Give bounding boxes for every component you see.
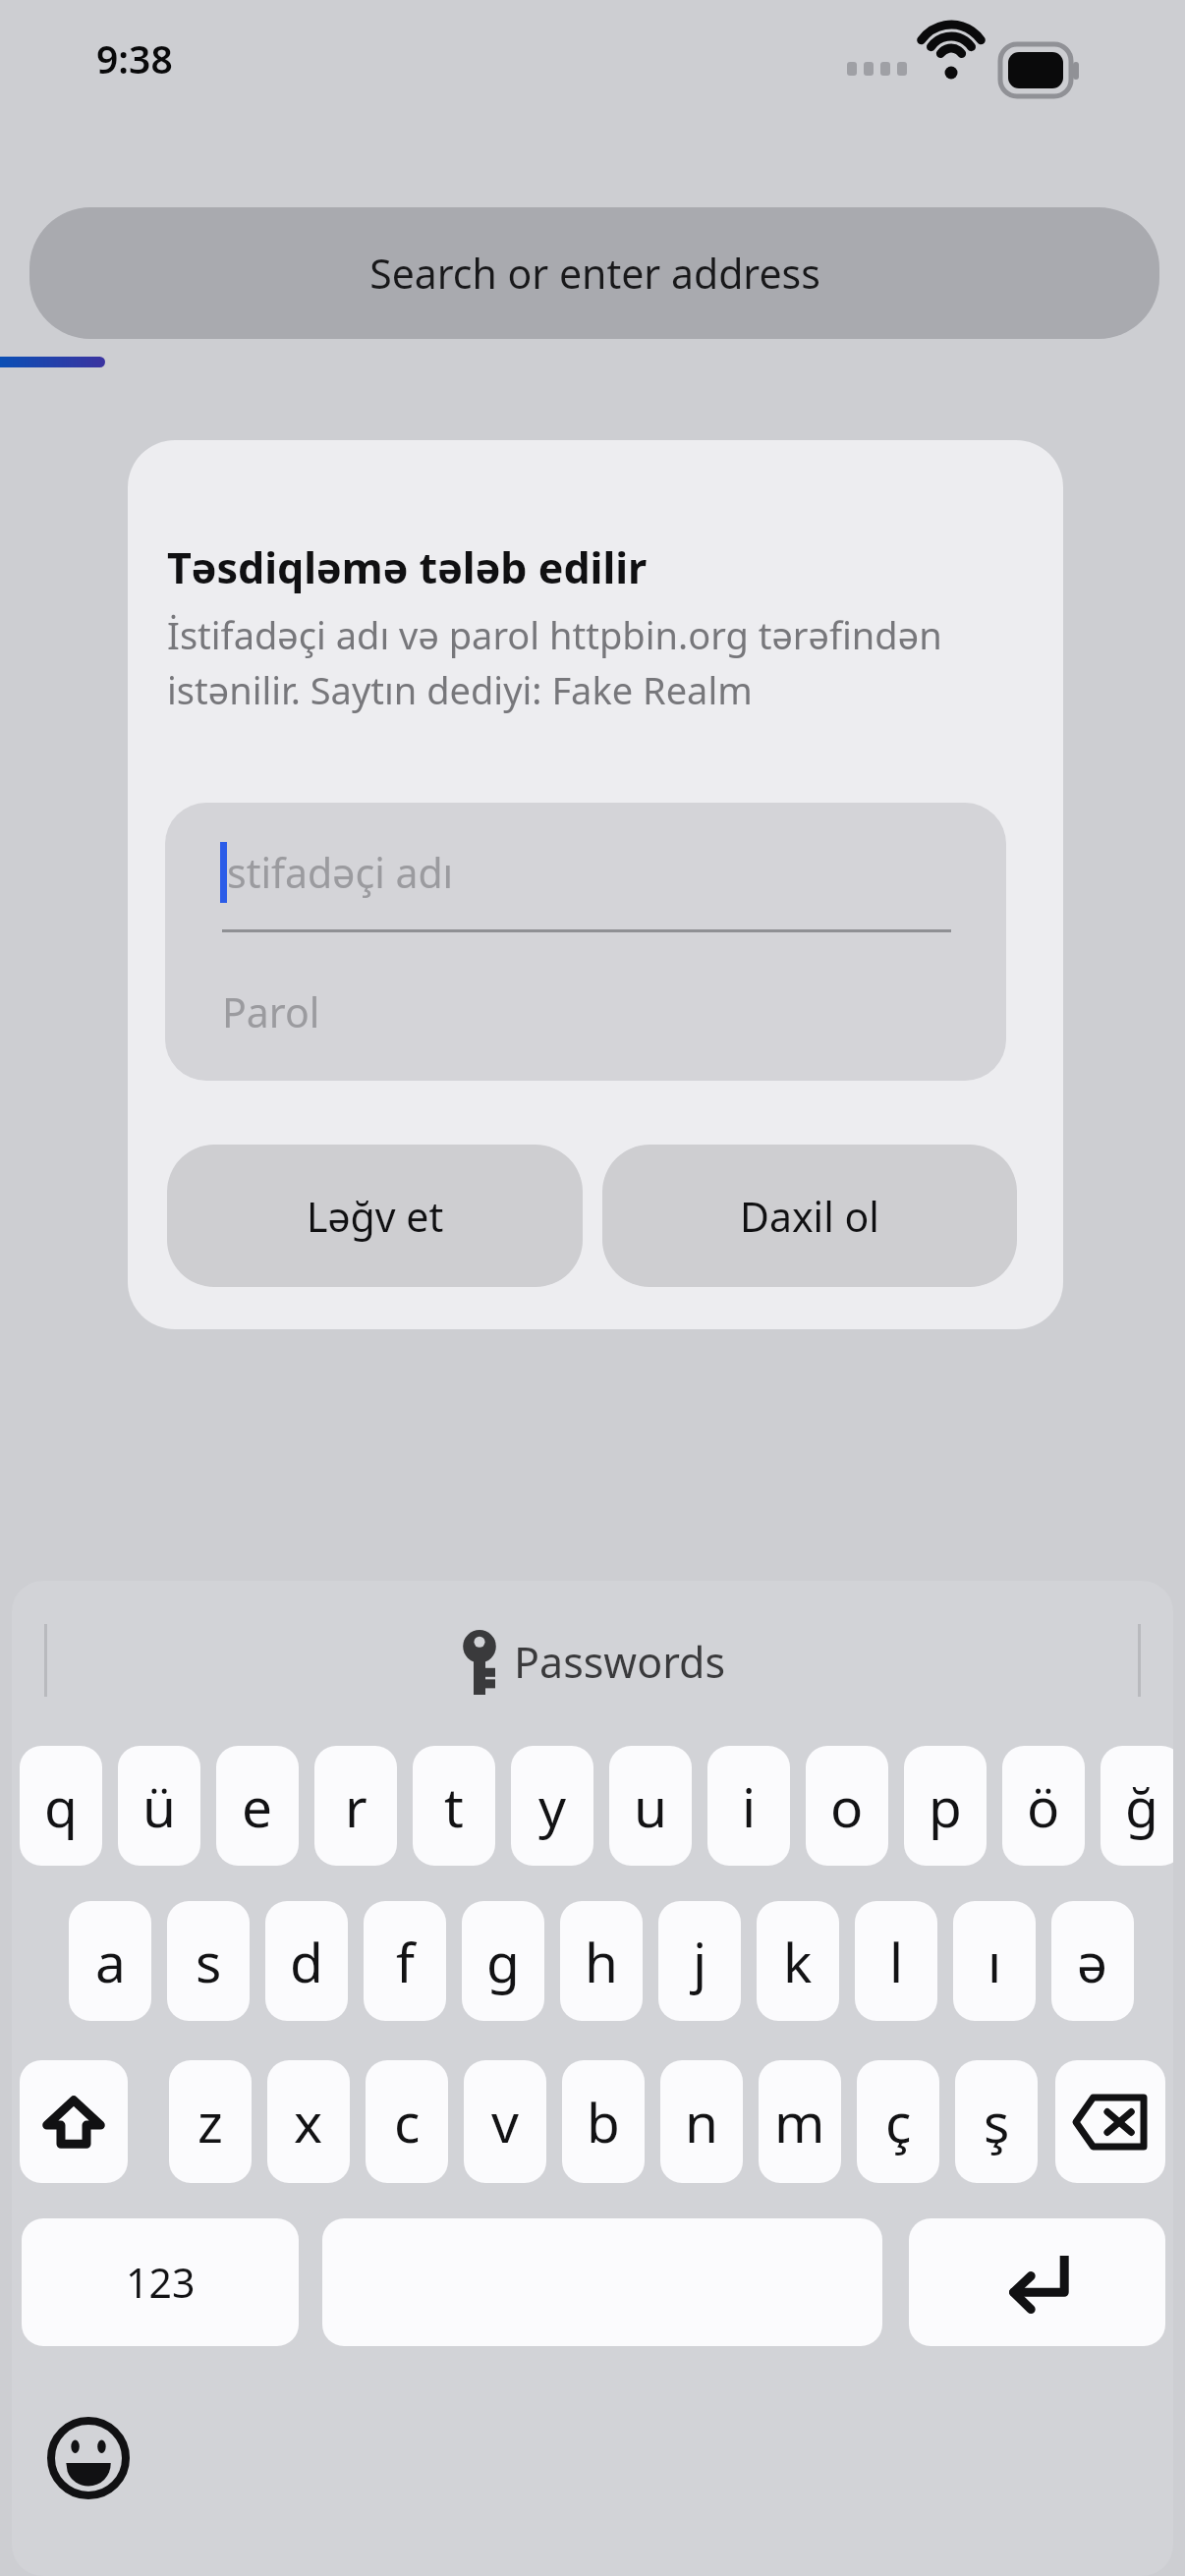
staticText: Daxil ol	[740, 1189, 879, 1244]
staticText: g	[486, 1925, 520, 1998]
staticText: 123	[126, 2255, 196, 2310]
button[interactable]: a	[69, 1901, 151, 2021]
staticText: ö	[1027, 1769, 1060, 1843]
staticText: ğ	[1125, 1769, 1158, 1843]
button[interactable]: h	[560, 1901, 643, 2021]
button[interactable]: Backspace	[1055, 2060, 1165, 2183]
button[interactable]: d	[265, 1901, 348, 2021]
staticText: d	[290, 1925, 323, 1998]
staticText: ı	[987, 1925, 1002, 1998]
staticText: Ləğv et	[307, 1189, 444, 1244]
staticText: Search or enter address	[369, 246, 820, 301]
staticText: i	[742, 1769, 757, 1843]
staticText: İstifadəçi adı və parol httpbin.org tərə…	[167, 609, 1032, 715]
button[interactable]: s	[167, 1901, 250, 2021]
staticText: j	[693, 1925, 707, 1998]
staticText: o	[830, 1769, 864, 1843]
button[interactable]: ı	[953, 1901, 1036, 2021]
button[interactable]: 123	[22, 2218, 299, 2346]
button[interactable]: Emoji	[41, 2411, 136, 2505]
button[interactable]: y	[511, 1746, 593, 1866]
staticText: y	[538, 1769, 567, 1843]
staticText: ş	[984, 2085, 1010, 2158]
staticText: q	[44, 1769, 78, 1843]
button[interactable]: Shift	[20, 2060, 128, 2183]
staticText: k	[783, 1925, 813, 1998]
button[interactable]: ğ	[1100, 1746, 1173, 1866]
button[interactable]: b	[562, 2060, 645, 2183]
staticText: c	[394, 2085, 421, 2158]
staticText: b	[587, 2085, 620, 2158]
staticText: s	[196, 1925, 222, 1998]
staticText: Təsdiqləmə tələb edilir	[167, 538, 648, 596]
button[interactable]: f	[364, 1901, 446, 2021]
button[interactable]: l	[855, 1901, 937, 2021]
button[interactable]: n	[660, 2060, 743, 2183]
staticText: m	[774, 2085, 825, 2158]
staticText: n	[685, 2085, 718, 2158]
staticText: v	[491, 2085, 519, 2158]
button[interactable]: ö	[1002, 1746, 1085, 1866]
button[interactable]: z	[169, 2060, 252, 2183]
button[interactable]: q	[20, 1746, 102, 1866]
staticText: Parol	[222, 984, 320, 1039]
staticText: z	[197, 2085, 223, 2158]
staticText: stifadəçi adı	[227, 845, 454, 900]
button[interactable]: t	[413, 1746, 495, 1866]
button[interactable]: j	[658, 1901, 741, 2021]
button[interactable]: Space	[322, 2218, 882, 2346]
staticText: h	[585, 1925, 618, 1998]
button[interactable]: Parol	[165, 942, 1006, 1081]
button[interactable]: c	[366, 2060, 448, 2183]
staticText: ü	[142, 1769, 176, 1843]
button[interactable]: Daxil ol	[602, 1145, 1017, 1287]
staticText: x	[294, 2085, 323, 2158]
staticText: r	[345, 1769, 367, 1843]
button[interactable]: Search or enter address	[29, 207, 1159, 339]
button[interactable]: x	[267, 2060, 350, 2183]
button[interactable]: i	[707, 1746, 790, 1866]
button[interactable]: r	[314, 1746, 397, 1866]
staticText: p	[929, 1769, 962, 1843]
button[interactable]: stifadəçi adı	[165, 803, 1006, 942]
staticText: a	[95, 1925, 126, 1998]
staticText: e	[242, 1769, 273, 1843]
staticText: f	[396, 1925, 415, 1998]
button[interactable]: Ləğv et	[167, 1145, 583, 1287]
staticText: ə	[1077, 1925, 1108, 1998]
button[interactable]: m	[759, 2060, 841, 2183]
button[interactable]: ç	[857, 2060, 939, 2183]
staticText: 9:38	[96, 32, 173, 84]
staticText: l	[889, 1925, 904, 1998]
button[interactable]: ə	[1051, 1901, 1134, 2021]
button[interactable]: ü	[118, 1746, 200, 1866]
staticText: ç	[885, 2085, 912, 2158]
button[interactable]: p	[904, 1746, 987, 1866]
button[interactable]: g	[462, 1901, 544, 2021]
button[interactable]: o	[806, 1746, 888, 1866]
button[interactable]: v	[464, 2060, 546, 2183]
button[interactable]: k	[757, 1901, 839, 2021]
button[interactable]: ş	[955, 2060, 1038, 2183]
staticText: t	[444, 1769, 464, 1843]
button[interactable]: Passwords	[12, 1581, 1173, 1742]
button[interactable]: e	[216, 1746, 299, 1866]
button[interactable]: u	[609, 1746, 692, 1866]
button[interactable]: Return	[909, 2218, 1165, 2346]
staticText: Passwords	[514, 1633, 726, 1691]
staticText: u	[634, 1769, 667, 1843]
